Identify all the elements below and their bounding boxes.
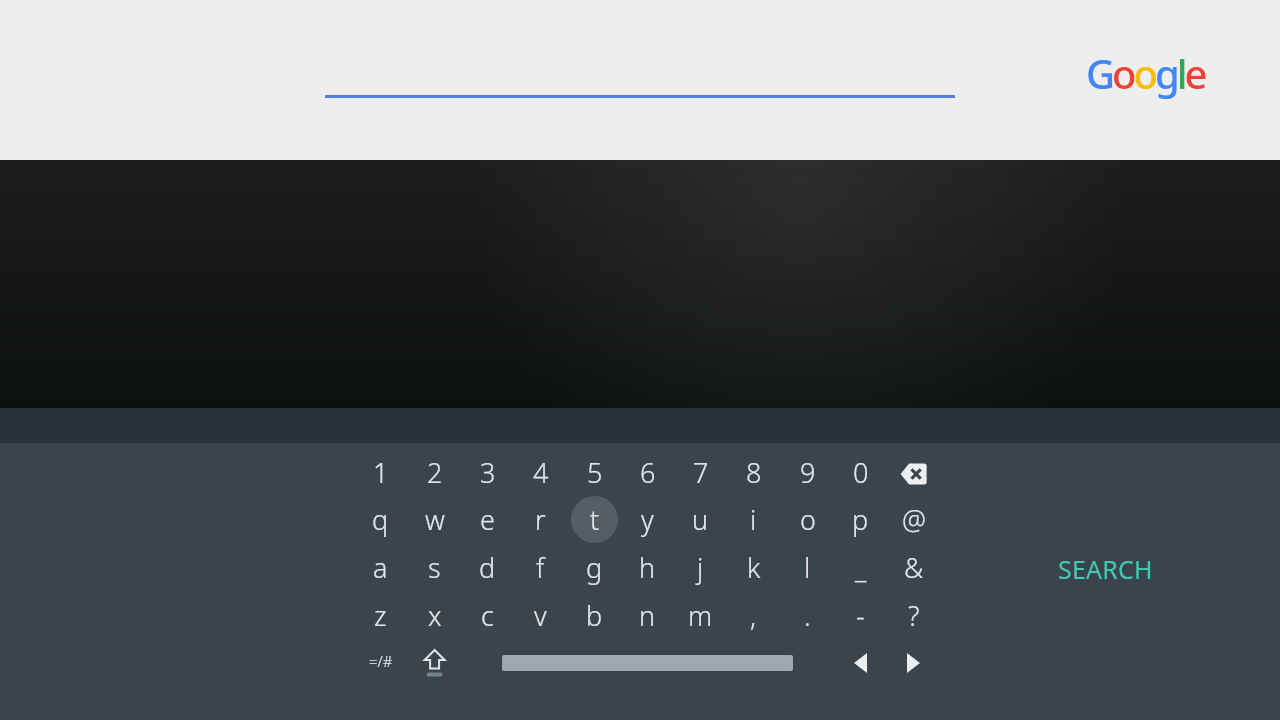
button[interactable]: 9	[781, 448, 834, 496]
button[interactable]: r	[514, 495, 567, 543]
staticText: u	[692, 501, 709, 538]
staticText: 9	[800, 454, 816, 491]
staticText: w	[425, 501, 445, 538]
button[interactable]: Google	[1055, 42, 1235, 104]
staticText: 3	[480, 454, 496, 491]
button[interactable]: &	[887, 543, 940, 591]
button[interactable]: e	[461, 495, 514, 543]
staticText: 4	[533, 454, 549, 491]
button[interactable]: 5	[568, 448, 621, 496]
button[interactable]	[887, 639, 940, 687]
button[interactable]: b	[568, 591, 621, 639]
button[interactable]: -	[834, 591, 887, 639]
button[interactable]: u	[674, 495, 727, 543]
button[interactable]: m	[674, 591, 727, 639]
staticText: =/#	[369, 651, 393, 671]
button[interactable]: 6	[621, 448, 674, 496]
button[interactable]: ?	[887, 591, 940, 639]
button[interactable]: w	[408, 495, 461, 543]
button[interactable]: =/#	[354, 637, 407, 685]
staticText: a	[373, 549, 388, 586]
button[interactable]: 0	[834, 448, 887, 496]
staticText: q	[372, 501, 389, 538]
staticText: f	[536, 549, 545, 586]
staticText: l	[804, 549, 811, 586]
button[interactable]	[887, 450, 940, 498]
button[interactable]: t	[568, 495, 621, 543]
button[interactable]	[834, 639, 887, 687]
button[interactable]: ,	[727, 591, 780, 639]
staticText: m	[688, 597, 713, 634]
staticText: 6	[640, 454, 656, 491]
staticText: 8	[746, 454, 762, 491]
button[interactable]: d	[461, 543, 514, 591]
staticText: d	[479, 549, 496, 586]
staticText: t	[590, 501, 600, 538]
button[interactable]: l	[781, 543, 834, 591]
button[interactable]: g	[568, 543, 621, 591]
button[interactable]: j	[674, 543, 727, 591]
staticText: b	[586, 597, 603, 634]
staticText: &	[904, 549, 924, 586]
staticText: z	[374, 597, 387, 634]
button[interactable]: o	[781, 495, 834, 543]
staticText: r	[535, 501, 546, 538]
staticText: Google	[1086, 46, 1205, 100]
button[interactable]: SEARCH	[1030, 545, 1180, 593]
staticText: o	[800, 501, 816, 538]
staticText: -	[856, 597, 865, 634]
button[interactable]: p	[834, 495, 887, 543]
button[interactable]: n	[621, 591, 674, 639]
staticText: s	[428, 549, 441, 586]
button[interactable]: 1	[354, 448, 407, 496]
staticText: .	[804, 597, 811, 634]
staticText: 5	[587, 454, 603, 491]
button[interactable]: 4	[514, 448, 567, 496]
staticText: 1	[373, 454, 389, 491]
button[interactable]: c	[461, 591, 514, 639]
staticText: v	[534, 597, 547, 634]
staticText: n	[639, 597, 656, 634]
staticText: y	[641, 501, 654, 538]
staticText: _	[855, 549, 867, 586]
button[interactable]: f	[514, 543, 567, 591]
button[interactable]	[408, 639, 461, 687]
button[interactable]: 8	[727, 448, 780, 496]
button[interactable]: 7	[674, 448, 727, 496]
button[interactable]: v	[514, 591, 567, 639]
button[interactable]: a	[354, 543, 407, 591]
staticText: 0	[853, 454, 869, 491]
staticText: ,	[750, 597, 757, 634]
button[interactable]: @	[887, 495, 940, 543]
button[interactable]: y	[621, 495, 674, 543]
button[interactable]: 2	[408, 448, 461, 496]
button[interactable]: .	[781, 591, 834, 639]
staticText: k	[747, 549, 761, 586]
button[interactable]: i	[727, 495, 780, 543]
staticText: @	[902, 501, 926, 538]
button[interactable]: x	[408, 591, 461, 639]
button[interactable]: 3	[461, 448, 514, 496]
button[interactable]: s	[408, 543, 461, 591]
staticText: j	[697, 549, 704, 586]
staticText: h	[639, 549, 656, 586]
staticText: SEARCH	[1058, 552, 1153, 586]
staticText: c	[481, 597, 494, 634]
staticText: 7	[693, 454, 709, 491]
button[interactable]: k	[727, 543, 780, 591]
button[interactable]: q	[354, 495, 407, 543]
staticText: e	[480, 501, 495, 538]
button[interactable]: z	[354, 591, 407, 639]
staticText: 2	[427, 454, 443, 491]
staticText: x	[428, 597, 442, 634]
staticText: p	[852, 501, 869, 538]
button[interactable]: h	[621, 543, 674, 591]
staticText: i	[750, 501, 757, 538]
staticText: g	[586, 549, 603, 586]
button[interactable]: _	[834, 543, 887, 591]
staticText: ?	[908, 597, 920, 634]
